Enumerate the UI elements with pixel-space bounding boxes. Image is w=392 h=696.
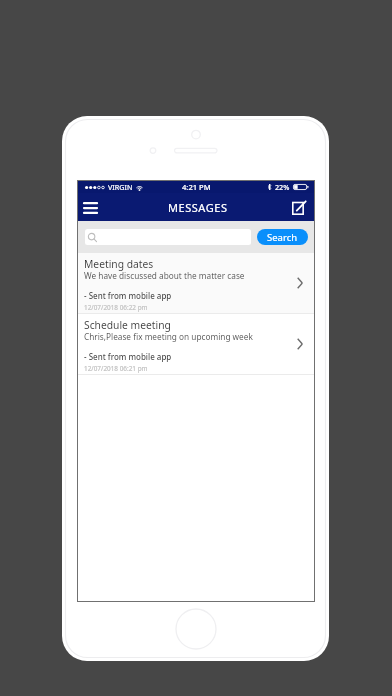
- staticText: - Sent from mobile app: [84, 290, 172, 301]
- button[interactable]: Compose new message: [287, 196, 311, 220]
- button[interactable]: Search: [257, 229, 308, 245]
- staticText: Chris,Please fix meeting on upcoming wee…: [84, 331, 253, 342]
- button[interactable]: Meeting dates: [77, 253, 315, 314]
- staticText: 12/07/2018 06:21 pm: [84, 364, 148, 373]
- button[interactable]: Search field: [85, 229, 251, 245]
- staticText: 4:21 PM: [182, 182, 211, 192]
- staticText: MESSAGES: [168, 200, 228, 215]
- button[interactable]: Open navigation menu: [78, 196, 102, 220]
- staticText: Schedule meeting: [84, 318, 171, 332]
- staticText: We have discussed about the matter case: [84, 270, 245, 281]
- button[interactable]: Schedule meeting: [77, 314, 315, 375]
- staticText: 22%: [275, 182, 290, 192]
- staticText: Meeting dates: [84, 257, 154, 271]
- staticText: Search: [267, 231, 298, 244]
- staticText: VIRGIN: [108, 182, 133, 192]
- staticText: - Sent from mobile app: [84, 351, 172, 362]
- staticText: 12/07/2018 06:22 pm: [84, 303, 148, 312]
